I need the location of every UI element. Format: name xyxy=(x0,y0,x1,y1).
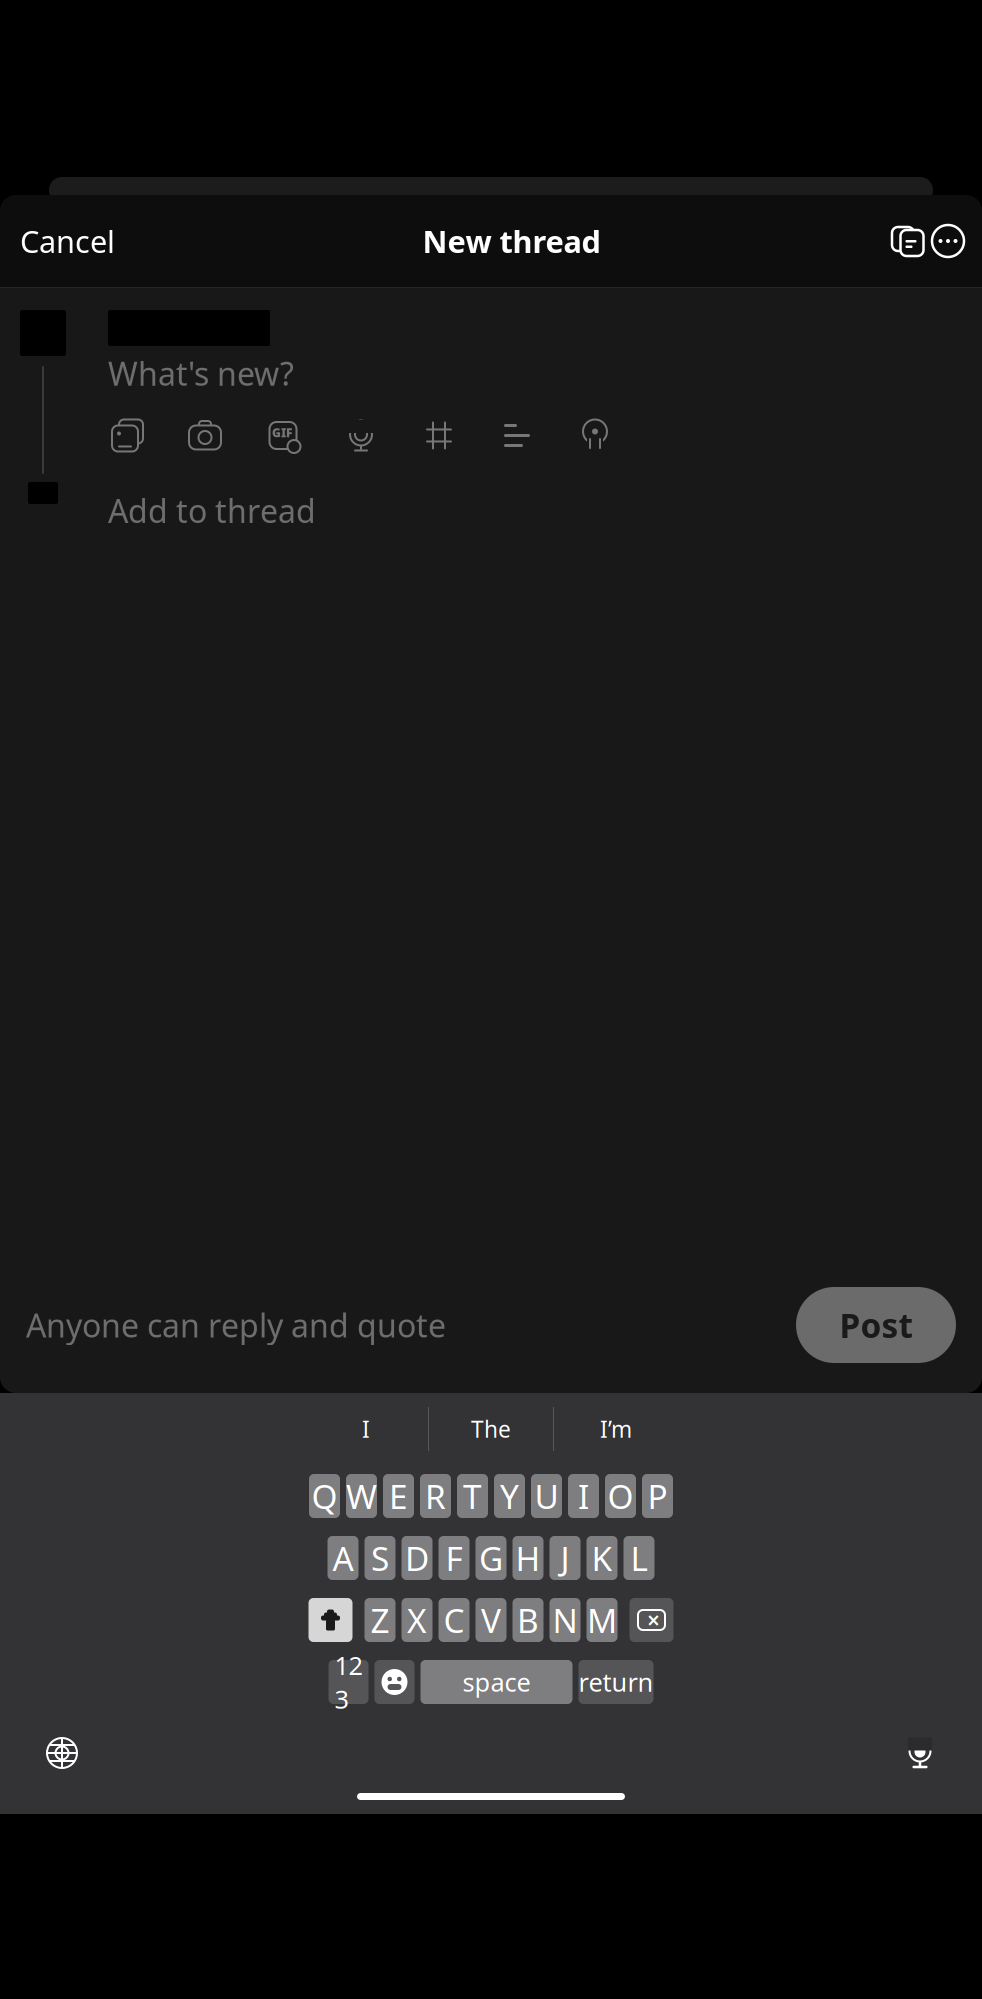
button[interactable]: Add location xyxy=(576,416,614,454)
button[interactable]: Emoji xyxy=(374,1660,414,1704)
staticText: R xyxy=(425,1474,446,1518)
button[interactable]: Anyone can reply and quote xyxy=(26,1304,446,1346)
button[interactable]: T xyxy=(457,1474,488,1518)
staticText: B xyxy=(517,1598,539,1642)
button[interactable]: I xyxy=(568,1474,599,1518)
staticText: Y xyxy=(500,1474,519,1518)
button[interactable]: H xyxy=(512,1536,543,1580)
staticText: Post xyxy=(839,1303,912,1347)
button[interactable]: E xyxy=(383,1474,414,1518)
staticText: M xyxy=(587,1598,617,1642)
button[interactable]: Z xyxy=(364,1598,395,1642)
button[interactable]: Q xyxy=(309,1474,340,1518)
button[interactable]: C xyxy=(438,1598,469,1642)
staticText: A xyxy=(332,1536,353,1580)
staticText: GIF xyxy=(272,424,292,440)
button[interactable]: Shift xyxy=(308,1598,352,1642)
staticText: 123 xyxy=(334,1648,362,1716)
button[interactable]: Record audio xyxy=(342,416,380,454)
button[interactable]: The xyxy=(429,1409,553,1449)
staticText: C xyxy=(443,1598,464,1642)
staticText: U xyxy=(534,1474,558,1518)
button[interactable]: Delete xyxy=(629,1598,673,1642)
button[interactable]: O xyxy=(605,1474,636,1518)
button[interactable]: I xyxy=(304,1409,428,1449)
button[interactable]: K xyxy=(586,1536,617,1580)
staticText: J xyxy=(560,1536,569,1580)
staticText: return xyxy=(578,1665,653,1699)
button[interactable]: Add to thread xyxy=(108,484,316,536)
staticText: L xyxy=(630,1536,647,1580)
button[interactable]: B xyxy=(512,1598,543,1642)
staticText: I xyxy=(578,1474,589,1518)
staticText: Anyone can reply and quote xyxy=(26,1304,446,1346)
staticText: K xyxy=(591,1536,612,1580)
staticText: New thread xyxy=(422,221,600,261)
staticText: D xyxy=(405,1536,429,1580)
staticText: Z xyxy=(370,1598,389,1642)
button[interactable]: V xyxy=(475,1598,506,1642)
staticText: Q xyxy=(311,1474,337,1518)
staticText: G xyxy=(479,1536,503,1580)
button[interactable]: D xyxy=(401,1536,432,1580)
staticText: O xyxy=(607,1474,633,1518)
button[interactable]: return xyxy=(578,1660,653,1704)
staticText: N xyxy=(552,1598,577,1642)
staticText: I xyxy=(362,1414,370,1444)
staticText: I’m xyxy=(600,1414,632,1444)
button[interactable]: R xyxy=(420,1474,451,1518)
button[interactable]: Next keyboard xyxy=(34,1725,90,1781)
staticText: S xyxy=(371,1536,389,1580)
button[interactable]: P xyxy=(642,1474,673,1518)
button[interactable]: F xyxy=(438,1536,469,1580)
button[interactable]: Add GIF xyxy=(264,416,302,454)
button[interactable]: I’m xyxy=(554,1409,678,1449)
button[interactable]: More options xyxy=(928,221,968,261)
button[interactable]: Add photo xyxy=(108,416,146,454)
button[interactable]: X xyxy=(401,1598,432,1642)
staticText: T xyxy=(463,1474,482,1518)
button[interactable]: space xyxy=(420,1660,572,1704)
button[interactable]: 123 xyxy=(328,1660,368,1704)
button[interactable]: S xyxy=(364,1536,395,1580)
staticText: Add to thread xyxy=(108,489,316,532)
button[interactable]: M xyxy=(586,1598,617,1642)
staticText: E xyxy=(389,1474,408,1518)
button[interactable]: Add poll xyxy=(498,416,536,454)
button[interactable]: Cancel xyxy=(0,212,135,270)
button[interactable]: W xyxy=(346,1474,377,1518)
button[interactable]: Add tag xyxy=(420,416,458,454)
staticText: What's new? xyxy=(108,352,294,394)
staticText: X xyxy=(407,1598,427,1642)
button[interactable]: N xyxy=(549,1598,580,1642)
button[interactable]: G xyxy=(475,1536,506,1580)
staticText: W xyxy=(346,1474,377,1518)
staticText: H xyxy=(515,1536,540,1580)
button[interactable]: J xyxy=(549,1536,580,1580)
staticText: space xyxy=(462,1665,530,1699)
button[interactable]: Y xyxy=(494,1474,525,1518)
staticText: Cancel xyxy=(20,221,115,261)
staticText: × xyxy=(647,1605,660,1635)
button[interactable]: U xyxy=(531,1474,562,1518)
staticText: V xyxy=(481,1598,501,1642)
staticText: F xyxy=(445,1536,462,1580)
staticText: P xyxy=(647,1474,667,1518)
button[interactable]: L xyxy=(623,1536,654,1580)
button[interactable]: Drafts xyxy=(888,221,928,261)
button[interactable]: Post xyxy=(796,1287,956,1363)
button[interactable]: Dictation xyxy=(892,1725,948,1781)
button[interactable]: Take photo xyxy=(186,416,224,454)
button[interactable]: A xyxy=(327,1536,358,1580)
staticText: The xyxy=(471,1414,511,1444)
